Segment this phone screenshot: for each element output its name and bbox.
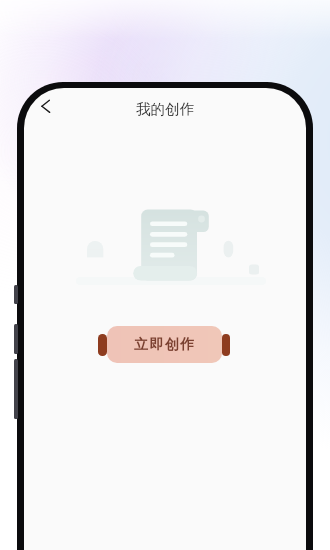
button[interactable]: 立即创作: [98, 326, 230, 363]
staticText: 我的创作: [136, 100, 194, 118]
button[interactable]: Back: [29, 90, 63, 124]
staticText: 立即创作: [134, 336, 196, 354]
